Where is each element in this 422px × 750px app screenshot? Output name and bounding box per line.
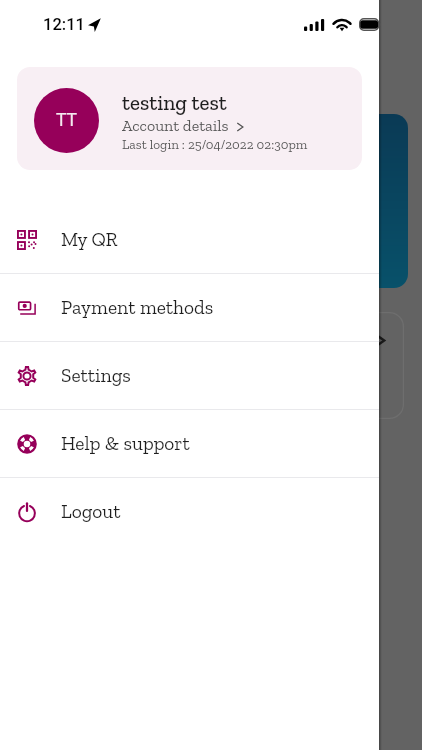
staticText: 12:11 bbox=[43, 15, 85, 34]
button[interactable]: TT bbox=[17, 67, 362, 170]
button[interactable]: Payment methods bbox=[0, 274, 379, 341]
staticText: testing test bbox=[122, 90, 227, 115]
staticText: Account details bbox=[122, 116, 229, 135]
staticText: Last login : 25/04/2022 02:30pm bbox=[122, 136, 308, 152]
staticText: Logout bbox=[61, 500, 121, 523]
staticText: Payment methods bbox=[61, 296, 214, 319]
button[interactable]: Settings bbox=[0, 342, 379, 409]
staticText: Settings bbox=[61, 364, 131, 387]
staticText: TT bbox=[56, 110, 78, 131]
staticText: My QR bbox=[61, 228, 118, 251]
button[interactable]: Help & support bbox=[0, 410, 379, 477]
staticText: Help & support bbox=[61, 432, 190, 455]
button[interactable]: Logout bbox=[0, 478, 379, 545]
other: Location bbox=[88, 18, 101, 32]
button[interactable]: My QR bbox=[0, 206, 379, 273]
